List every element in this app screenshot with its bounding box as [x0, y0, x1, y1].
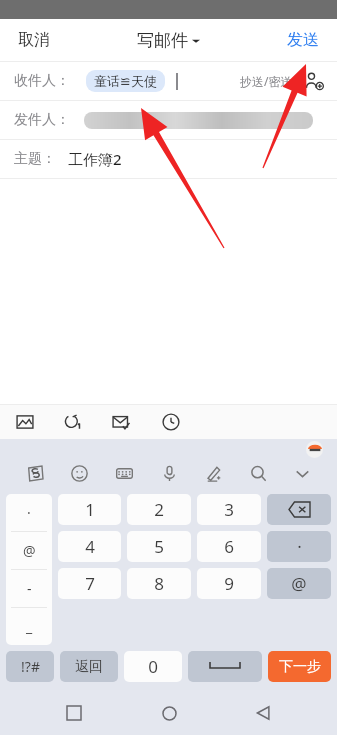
staticText: 4	[85, 535, 95, 558]
button[interactable]: Handwriting	[199, 459, 227, 487]
staticText: 写邮件	[137, 30, 188, 51]
staticText: -	[27, 579, 32, 598]
button[interactable]: 8	[127, 568, 191, 599]
staticText: 返回	[75, 658, 103, 676]
button[interactable]: Attachments	[60, 409, 86, 435]
staticText: 发件人：	[14, 111, 70, 129]
staticText: 发送	[287, 30, 319, 50]
button[interactable]: 写邮件	[131, 26, 206, 55]
button[interactable]: Input method	[21, 459, 49, 487]
button[interactable]: Add contact	[299, 66, 329, 96]
button[interactable]: 6	[197, 531, 261, 562]
button[interactable]: Home	[149, 693, 189, 733]
button[interactable]: 1	[58, 494, 121, 525]
button[interactable]: 取消	[10, 26, 58, 54]
staticText: @	[23, 541, 36, 560]
button[interactable]: 下一步	[268, 651, 331, 682]
button[interactable]: Search	[244, 459, 272, 487]
button[interactable]: Mail receipt	[108, 409, 134, 435]
staticText: ·	[27, 503, 31, 522]
button[interactable]: 2	[127, 494, 191, 525]
button[interactable]: Insert image	[12, 409, 38, 435]
button[interactable]: 0	[124, 651, 182, 682]
button[interactable]: !?#	[6, 651, 54, 682]
staticText: 抄送/密送	[240, 73, 293, 89]
button[interactable]: Voice input	[155, 459, 183, 487]
staticText: 8	[154, 572, 164, 595]
button[interactable]: Mascot	[306, 441, 323, 458]
staticText: 工作簿2	[68, 149, 122, 169]
button[interactable]: 3	[197, 494, 261, 525]
button[interactable]: 发送	[279, 26, 327, 54]
staticText: @	[291, 572, 307, 595]
button[interactable]: ·	[6, 494, 52, 645]
staticText: !?#	[21, 657, 40, 676]
staticText: 5	[154, 535, 164, 558]
button[interactable]: @	[267, 568, 331, 599]
button[interactable]: Hide keyboard	[288, 459, 316, 487]
staticText: 6	[224, 535, 234, 558]
button[interactable]: Backspace	[267, 494, 331, 525]
button[interactable]: Emoji	[65, 459, 93, 487]
staticText: 主题：	[14, 150, 56, 168]
button[interactable]: 5	[127, 531, 191, 562]
button[interactable]: Keyboard layout	[110, 459, 138, 487]
staticText: 下一步	[279, 658, 321, 676]
button[interactable]: Space	[188, 651, 262, 682]
staticText: 7	[85, 572, 95, 595]
staticText: ·	[297, 535, 302, 558]
button[interactable]: 9	[197, 568, 261, 599]
staticText: 9	[224, 572, 234, 595]
button[interactable]: Recents	[54, 693, 94, 733]
staticText: 3	[224, 498, 234, 521]
staticText: 1	[85, 498, 95, 521]
staticText: 童话≌天使	[94, 73, 157, 89]
button[interactable]: Schedule send	[158, 409, 184, 435]
staticText: 取消	[18, 30, 50, 50]
button[interactable]: 4	[58, 531, 121, 562]
button[interactable]: Back	[243, 693, 283, 733]
staticText: _	[26, 617, 33, 636]
button[interactable]: ·	[267, 531, 331, 562]
button[interactable]: 7	[58, 568, 121, 599]
staticText: 收件人：	[14, 72, 70, 90]
staticText: 0	[148, 655, 158, 678]
staticText: 2	[154, 498, 164, 521]
button[interactable]: 返回	[60, 651, 118, 682]
button[interactable]: 童话≌天使	[86, 70, 165, 92]
